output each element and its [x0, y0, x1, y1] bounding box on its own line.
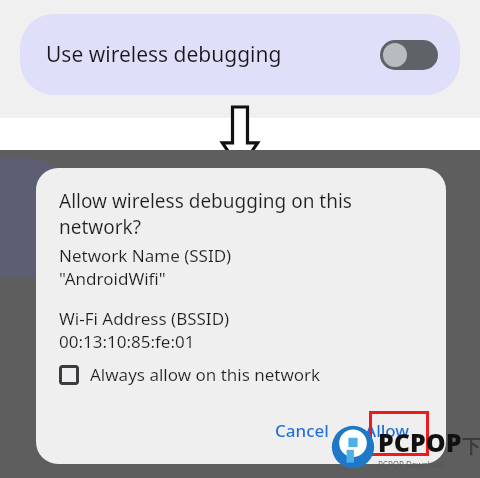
staticText: 下载 — [462, 435, 480, 459]
staticText: Allow — [365, 419, 410, 442]
staticText: Always allow on this network — [90, 363, 321, 386]
staticText: Wi-Fi Address (BSSID) — [59, 307, 230, 330]
button[interactable]: Always allow on this network — [59, 363, 426, 386]
button[interactable]: Use wireless debugging — [20, 14, 460, 95]
button[interactable]: Use wireless debugging toggle — [380, 40, 438, 70]
staticText: PCPOP — [378, 425, 462, 459]
staticText: Use wireless debugging — [46, 40, 380, 69]
staticText: Network Name (SSID) — [59, 244, 232, 267]
staticText: "AndroidWifi" — [59, 267, 166, 290]
staticText: Cancel — [275, 419, 329, 442]
button[interactable]: Cancel — [265, 413, 339, 448]
button[interactable]: Allow — [355, 413, 420, 448]
staticText: PCPOP Download — [378, 459, 444, 470]
staticText: Allow wireless debugging on this network… — [59, 188, 426, 239]
staticText: 00:13:10:85:fe:01 — [59, 330, 195, 353]
